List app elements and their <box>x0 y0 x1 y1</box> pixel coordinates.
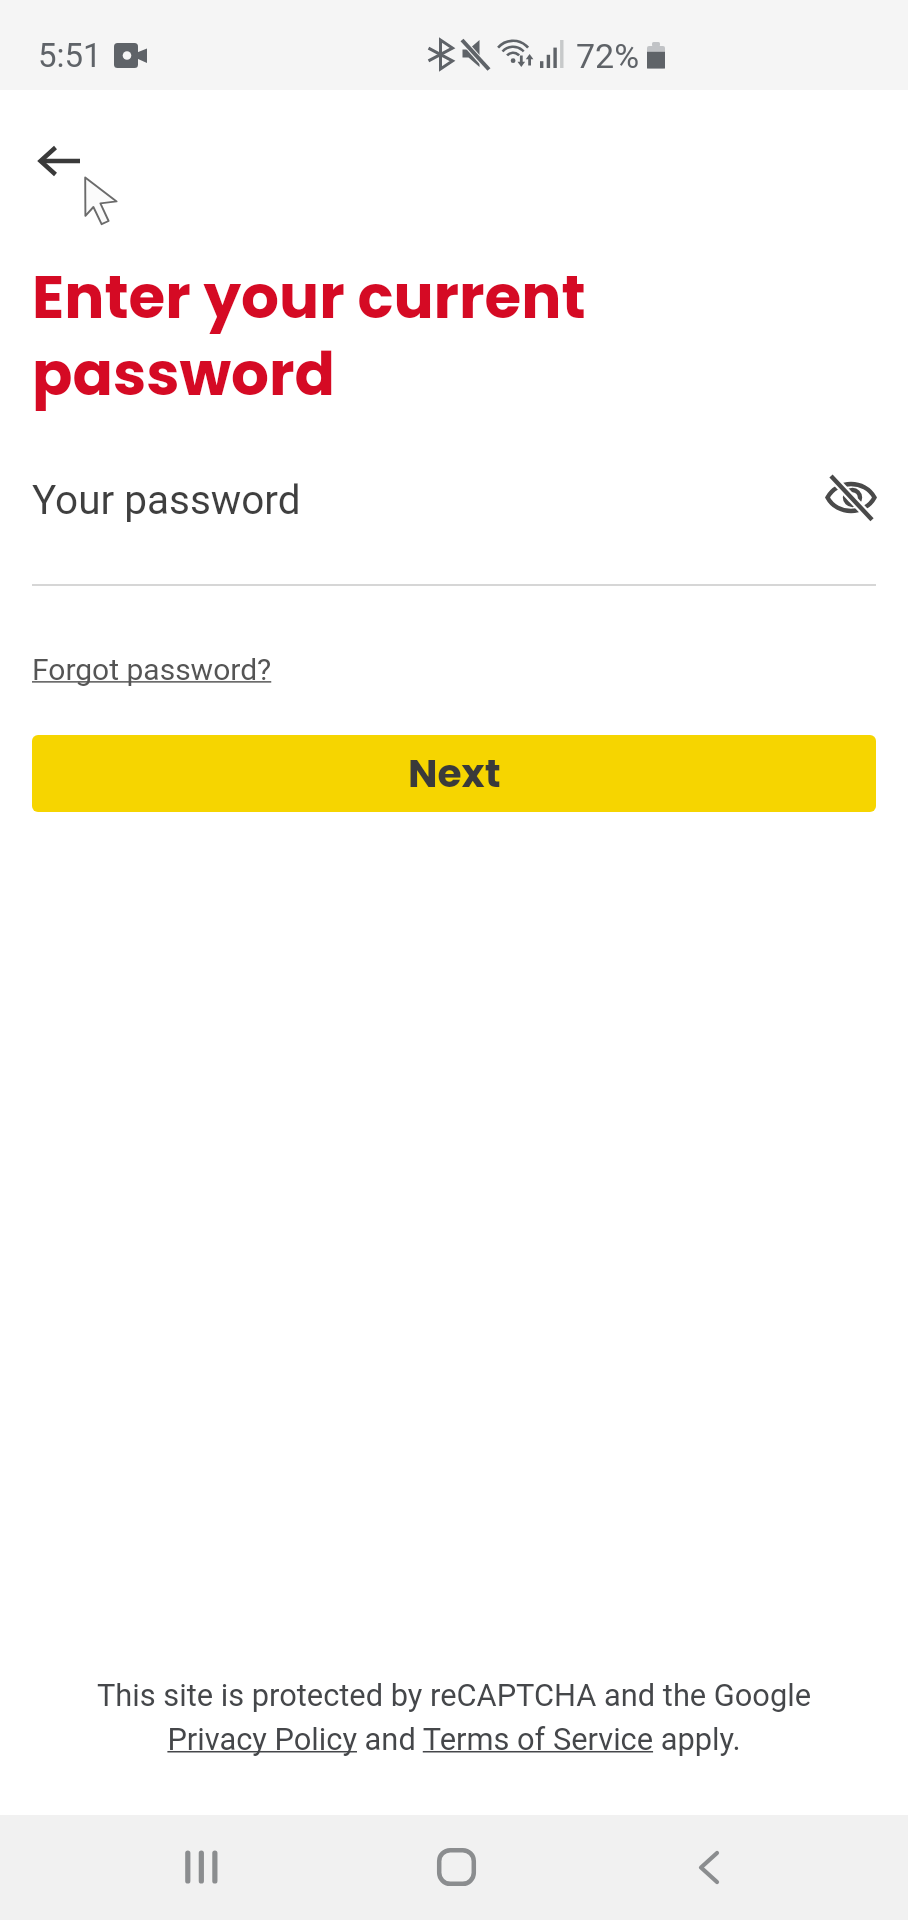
staticText: Next <box>408 746 501 801</box>
button[interactable]: Home <box>411 1822 501 1912</box>
button[interactable]: Back <box>664 1822 754 1912</box>
staticText: Your password <box>32 476 301 523</box>
button[interactable]: Next <box>32 735 876 812</box>
button[interactable]: Recent apps <box>156 1822 246 1912</box>
staticText: Forgot password? <box>32 652 272 687</box>
staticText: This site is protected by reCAPTCHA and … <box>0 1677 908 1757</box>
staticText: Enter your current password <box>32 255 586 416</box>
staticText: 5:51 <box>38 36 102 75</box>
button[interactable]: Forgot password? <box>32 652 272 687</box>
button[interactable]: Show password <box>807 453 895 541</box>
staticText: 72% <box>576 36 640 76</box>
button[interactable]: Back <box>15 117 103 205</box>
